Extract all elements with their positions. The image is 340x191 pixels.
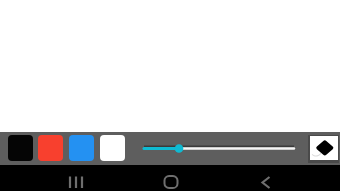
button[interactable]: Back <box>246 165 286 191</box>
button[interactable]: White colour <box>100 135 125 161</box>
button[interactable]: Brush shape <box>310 136 338 160</box>
button[interactable]: Black colour <box>8 135 33 161</box>
button[interactable]: Home <box>151 165 191 191</box>
button[interactable]: Red colour <box>38 135 63 161</box>
button[interactable]: Brush size <box>138 136 300 161</box>
button[interactable]: Blue colour <box>69 135 94 161</box>
button[interactable]: Recent apps <box>56 165 96 191</box>
